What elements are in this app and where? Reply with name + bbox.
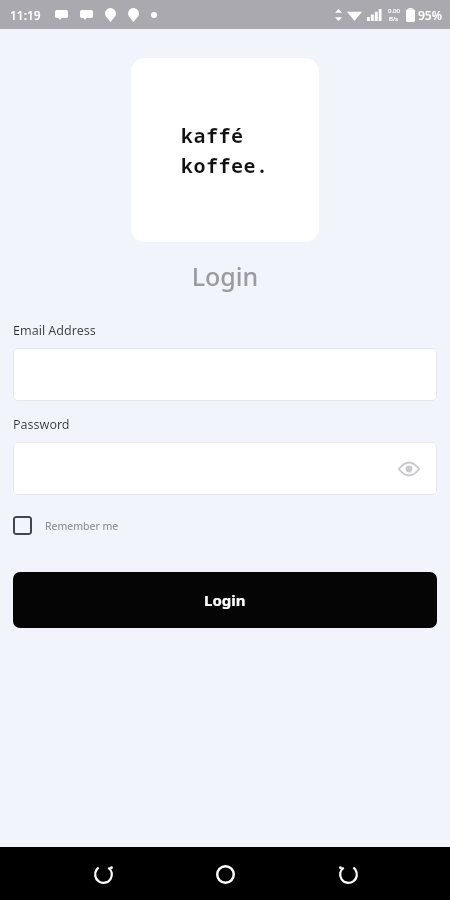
staticText: Login: [204, 590, 246, 610]
staticText: koffee.: [181, 152, 269, 179]
staticText: 0.00: [388, 7, 400, 15]
staticText: 95%: [418, 7, 442, 23]
button[interactable]: [13, 348, 437, 401]
staticText: kaffé: [181, 122, 244, 149]
button[interactable]: Login: [13, 572, 437, 628]
staticText: 11:19: [10, 7, 41, 23]
staticText: Email Address: [13, 322, 96, 339]
staticText: B/s: [389, 15, 399, 23]
button[interactable]: Show password: [13, 442, 437, 495]
button[interactable]: Home: [205, 854, 245, 894]
staticText: Remember me: [45, 519, 119, 533]
staticText: Password: [13, 416, 70, 433]
staticText: Login: [0, 259, 450, 293]
button[interactable]: Remember me: [13, 516, 119, 535]
button[interactable]: Back: [83, 854, 123, 894]
button[interactable]: Recent apps: [328, 854, 368, 894]
button[interactable]: Show password: [394, 454, 424, 484]
